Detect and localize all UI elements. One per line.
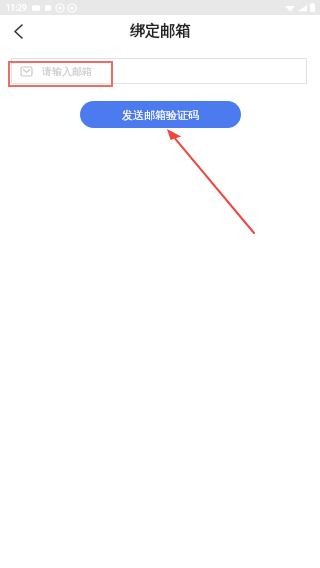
button[interactable]: Back (0, 15, 36, 48)
staticText: 绑定邮箱 (130, 22, 190, 41)
button[interactable]: 发送邮箱验证码 (80, 101, 241, 128)
button[interactable]: 请输入邮箱 (11, 58, 307, 84)
staticText: 请输入邮箱 (42, 65, 92, 78)
staticText: 11:29 (6, 2, 27, 13)
staticText: 发送邮箱验证码 (122, 108, 199, 122)
